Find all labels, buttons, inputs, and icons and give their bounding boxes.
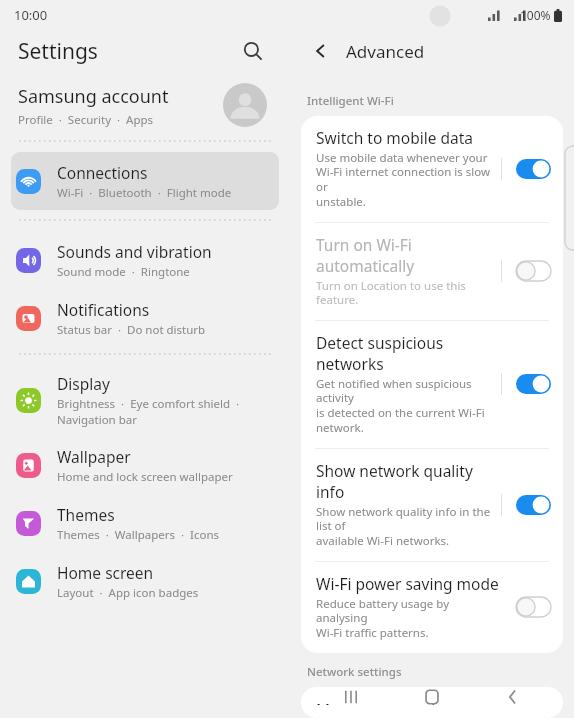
staticText: Manage networks (316, 699, 447, 705)
button[interactable]: Connections (11, 152, 279, 210)
staticText: Turn on Wi-Fi automatically (316, 234, 501, 276)
button[interactable]: Wi-Fi power saving mode (301, 562, 563, 653)
button[interactable]: Recents (331, 677, 371, 717)
button[interactable]: Themes (11, 494, 279, 552)
button[interactable]: Back (306, 36, 336, 66)
staticText: Network settings (307, 664, 402, 680)
button[interactable]: Switch to mobile data (516, 159, 551, 179)
staticText: Status bar · Do not disturb (57, 322, 206, 338)
button[interactable]: Samsung account (0, 72, 290, 140)
button[interactable]: Turn on Wi-Fi automatically (301, 223, 563, 320)
staticText: Connections (57, 162, 148, 183)
button[interactable]: Turn on Wi-Fi automatically (516, 261, 551, 281)
button[interactable]: Display (11, 364, 279, 436)
button[interactable]: Notifications (11, 289, 279, 347)
staticText: 100% (520, 7, 551, 23)
button[interactable]: Search (236, 34, 270, 68)
staticText: Themes · Wallpapers · Icons (57, 527, 219, 543)
button[interactable]: Manage networks (301, 687, 563, 718)
button[interactable]: Sounds and vibration (11, 231, 279, 289)
staticText: Wallpaper (57, 446, 131, 467)
staticText: Use mobile data whenever your Wi-Fi inte… (316, 150, 501, 210)
staticText: Sounds and vibration (57, 241, 212, 262)
staticText: Intelligent Wi-Fi (307, 93, 394, 109)
staticText: Home and lock screen wallpaper (57, 469, 233, 485)
button[interactable]: Back (493, 677, 533, 717)
button[interactable]: Home screen (11, 552, 279, 610)
staticText: Switch to mobile data (316, 127, 474, 148)
staticText: Turn on Location to use this feature. (316, 278, 501, 308)
button[interactable]: Wi-Fi power saving mode (516, 597, 551, 617)
staticText: Wi-Fi · Bluetooth · Flight mode (57, 185, 232, 201)
staticText: Profile · Security · Apps (18, 112, 154, 128)
button[interactable]: Show network quality info (516, 495, 551, 515)
button[interactable]: Home (412, 677, 452, 717)
staticText: Wi-Fi power saving mode (316, 573, 499, 594)
staticText: Sound mode · Ringtone (57, 264, 190, 280)
staticText: Settings (18, 37, 98, 66)
staticText: Home screen (57, 562, 154, 583)
staticText: Display (57, 373, 110, 394)
staticText: 10:00 (14, 6, 48, 24)
staticText: Get notified when suspicious activity is… (316, 376, 501, 436)
button[interactable]: Detect suspicious networks (301, 321, 563, 448)
button[interactable]: Switch to mobile data (301, 116, 563, 222)
staticText: Notifications (57, 299, 150, 320)
button[interactable]: Show network quality info (301, 449, 563, 561)
staticText: Detect suspicious networks (316, 332, 501, 374)
button[interactable]: Detect suspicious networks (516, 374, 551, 394)
staticText: Samsung account (18, 84, 169, 109)
staticText: Show network quality info (316, 460, 501, 502)
staticText: Show network quality info in the list of… (316, 504, 501, 549)
staticText: Themes (57, 504, 115, 525)
staticText: Brightness · Eye comfort shield · Naviga… (57, 396, 240, 427)
staticText: Layout · App icon badges (57, 585, 199, 601)
button[interactable]: Wallpaper (11, 436, 279, 494)
staticText: Reduce battery usage by analysing Wi-Fi … (316, 596, 501, 641)
staticText: Advanced (346, 40, 425, 63)
